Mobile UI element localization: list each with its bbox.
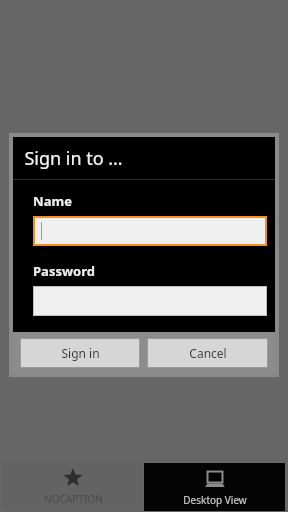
button[interactable]: Desktop View bbox=[144, 463, 285, 511]
other: Bookmarks bbox=[63, 468, 83, 488]
button[interactable]: Bookmarks bbox=[3, 463, 143, 511]
staticText: Sign in to … bbox=[24, 146, 123, 171]
button[interactable]: Sign in bbox=[21, 339, 139, 367]
staticText: Desktop View bbox=[183, 493, 247, 507]
other: Desktop View bbox=[204, 468, 226, 490]
staticText: Password bbox=[33, 262, 95, 280]
staticText: Cancel bbox=[189, 345, 227, 361]
staticText: Name bbox=[33, 192, 72, 210]
staticText: NOCAPTION bbox=[44, 492, 103, 506]
button[interactable]: Cancel bbox=[148, 339, 267, 367]
button[interactable] bbox=[35, 218, 265, 244]
staticText: Sign in bbox=[61, 345, 100, 361]
